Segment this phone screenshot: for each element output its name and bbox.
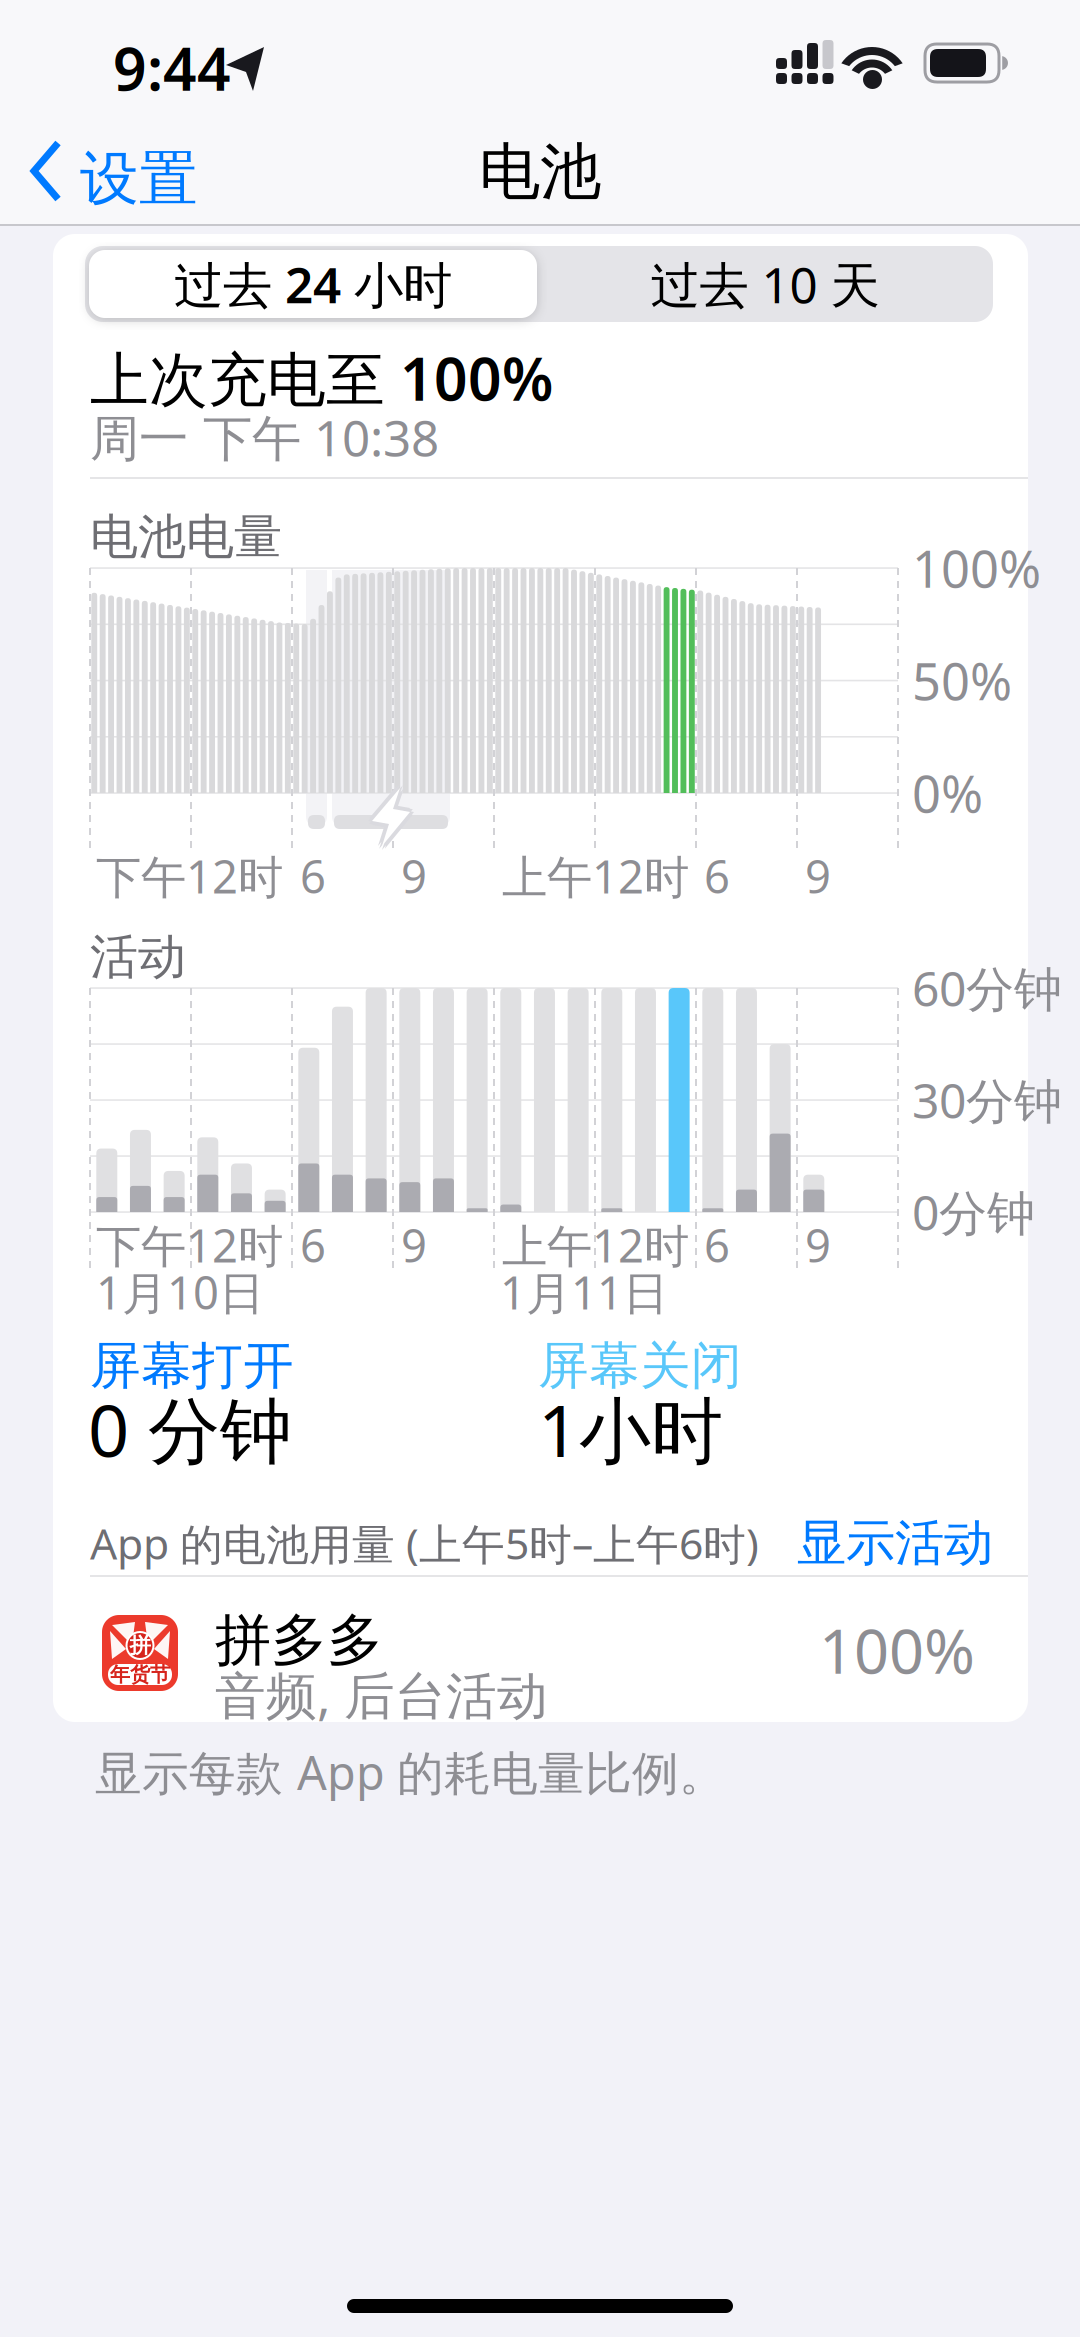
staticText: 6: [300, 1215, 326, 1275]
staticText: 拼多多: [215, 1606, 383, 1675]
staticText: 0 分钟: [88, 1381, 292, 1477]
staticText: 显示活动: [797, 1513, 993, 1573]
staticText: 6: [704, 846, 730, 906]
staticText: 9: [401, 846, 427, 906]
staticText: 音频, 后台活动: [215, 1661, 548, 1728]
staticText: 电池: [479, 134, 601, 210]
staticText: 下午12时: [96, 1215, 283, 1275]
staticText: 屏幕打开: [90, 1335, 294, 1397]
button[interactable]: 返回设置: [18, 126, 238, 216]
staticText: 上午12时: [502, 846, 689, 906]
staticText: 1月11日: [500, 1262, 668, 1322]
staticText: 年货节: [110, 1662, 170, 1687]
staticText: 屏幕关闭: [538, 1335, 742, 1397]
staticText: 9: [805, 846, 831, 906]
staticText: 0%: [912, 759, 983, 827]
button[interactable]: 过去 24 小时: [89, 250, 537, 318]
staticText: 拼: [129, 1632, 150, 1659]
staticText: 100%: [912, 534, 1041, 602]
staticText: 显示每款 App 的耗电量比例。: [95, 1741, 726, 1803]
staticText: 下午12时: [96, 846, 283, 906]
staticText: 6: [300, 846, 326, 906]
staticText: 1小时: [538, 1381, 723, 1477]
staticText: 9:44: [113, 29, 231, 107]
staticText: 上次充电至 100%: [90, 339, 553, 417]
staticText: App 的电池用量 (上午5时–上午6时): [90, 1515, 759, 1571]
staticText: 6: [704, 1215, 730, 1275]
button[interactable]: 显示活动: [763, 1508, 993, 1578]
staticText: 9: [805, 1215, 831, 1275]
staticText: 60分钟: [912, 956, 1062, 1020]
staticText: 过去 10 天: [650, 251, 879, 317]
button[interactable]: 拼: [53, 1577, 1028, 1723]
staticText: 过去 24 小时: [174, 251, 452, 317]
staticText: 周一 下午 10:38: [90, 404, 439, 470]
staticText: 0分钟: [912, 1180, 1035, 1244]
button[interactable]: 过去 10 天: [541, 250, 989, 318]
staticText: 上午12时: [502, 1215, 689, 1275]
staticText: 电池电量: [90, 507, 282, 566]
staticText: 设置: [80, 143, 198, 215]
staticText: 30分钟: [912, 1068, 1062, 1132]
staticText: 活动: [90, 927, 186, 986]
staticText: 9: [401, 1215, 427, 1275]
staticText: 50%: [912, 647, 1012, 714]
staticText: 1月10日: [96, 1262, 264, 1322]
staticText: 100%: [819, 1609, 975, 1691]
